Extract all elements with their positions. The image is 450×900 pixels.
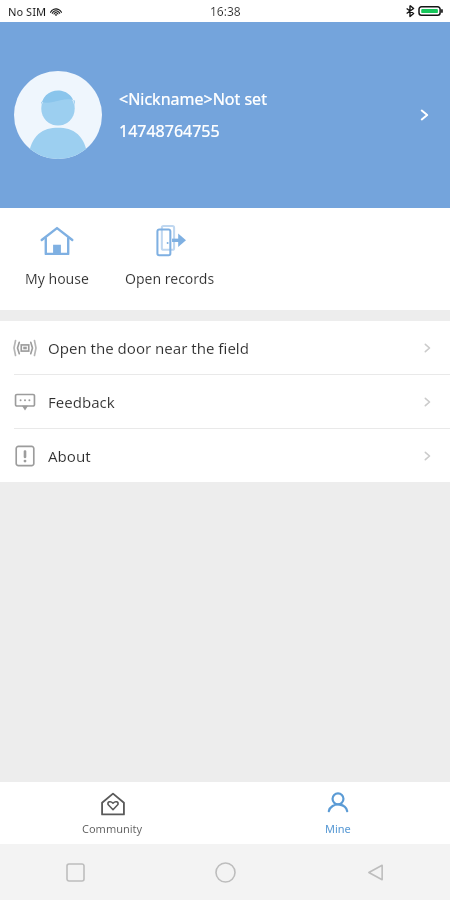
staticText: Open records [125,269,215,288]
button[interactable]: About [0,429,450,482]
other: Recents [67,864,84,881]
staticText: No SIM [8,4,47,19]
other: Home [215,862,236,883]
button[interactable]: Feedback [0,375,450,428]
other: Open profile details [416,107,432,123]
staticText: 14748764755 [119,120,220,142]
button[interactable]: Mine [225,782,450,844]
button[interactable]: Open the door near the field [0,321,450,374]
staticText: <Nickname>Not set [119,88,267,110]
staticText: Community [82,821,143,836]
staticText: Mine [325,821,351,836]
staticText: 16:38 [210,3,241,19]
staticText: Feedback [48,392,420,412]
staticText: About [48,446,420,466]
staticText: My house [25,269,89,288]
button[interactable]: <Nickname>Not set [0,22,450,208]
button[interactable]: My house [0,208,114,310]
button[interactable]: Open records [114,208,226,310]
other: Back [366,863,385,882]
button[interactable]: Community [0,782,225,844]
staticText: Open the door near the field [48,338,420,358]
